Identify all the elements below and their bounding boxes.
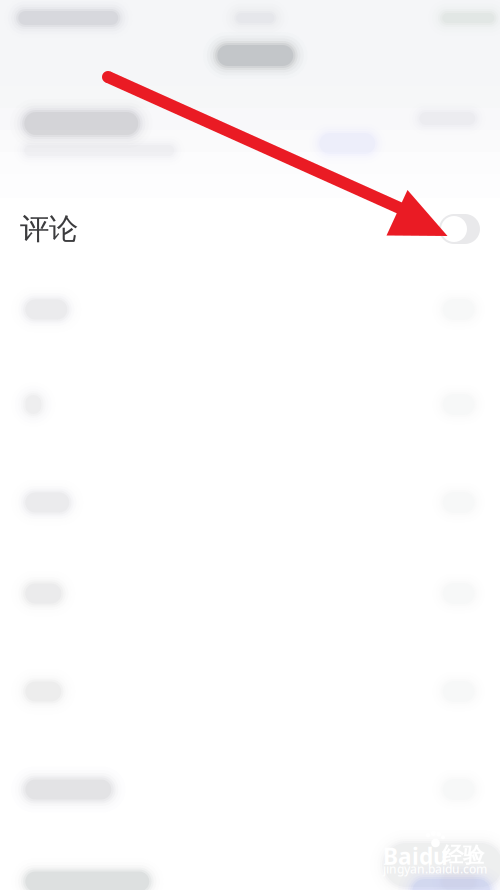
button[interactable]: 评论: [0, 198, 500, 260]
staticText: Baidu: [383, 841, 448, 871]
staticText: 经验: [442, 842, 484, 868]
staticText: jingyan.baidu.com: [383, 861, 487, 877]
staticText: 评论: [20, 211, 78, 247]
